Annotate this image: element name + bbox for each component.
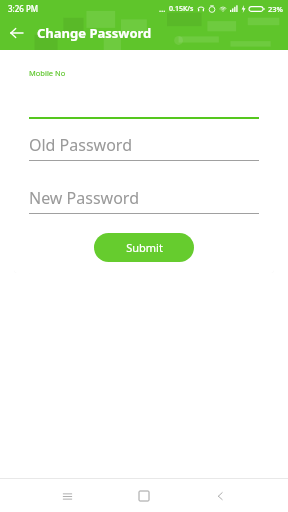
button[interactable]: Home — [129, 481, 159, 511]
staticText: Old Password — [29, 134, 132, 156]
button[interactable]: Old Password — [29, 134, 259, 161]
button[interactable]: Back — [0, 16, 34, 50]
staticText: 23% — [268, 4, 283, 14]
staticText: 0.15K/s — [169, 4, 194, 14]
staticText: Mobile No — [29, 68, 66, 78]
staticText: 3:26 PM — [8, 3, 39, 14]
staticText: … — [159, 3, 166, 14]
staticText: Submit — [126, 240, 163, 255]
staticText: Change Password — [37, 24, 152, 42]
button[interactable]: Mobile No — [29, 68, 259, 119]
button[interactable]: Back — [206, 481, 236, 511]
button[interactable]: Submit — [94, 233, 194, 262]
button[interactable]: Menu — [52, 481, 82, 511]
staticText: New Password — [29, 187, 139, 209]
button[interactable]: New Password — [29, 187, 259, 214]
